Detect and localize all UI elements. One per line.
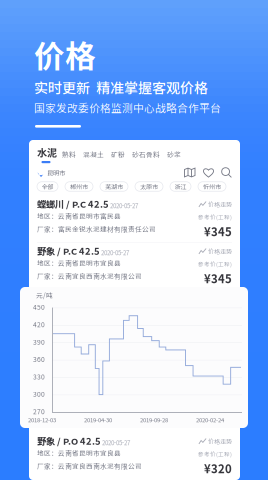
button[interactable]: 野象 / P.O 42.5 [37, 290, 232, 332]
button[interactable]: 砂石骨料 [132, 149, 160, 159]
staticText: 水泥 [37, 145, 57, 159]
staticText: 2019-04-30 [84, 415, 112, 424]
staticText: 野象 / P.O 42.5 [37, 291, 101, 304]
staticText: ¥320 [204, 460, 232, 476]
button[interactable]: 芜湖市 [100, 182, 128, 191]
staticText: 混凝土 [83, 149, 104, 159]
button[interactable]: 熟料 [62, 149, 76, 159]
staticText: 参考价(工程) [198, 260, 232, 268]
staticText: 地区：云南省昆明市宜良县 [37, 448, 121, 458]
button[interactable]: 水泥 [37, 145, 57, 162]
staticText: 2018-12-03 [28, 415, 56, 424]
staticText: 地区：云南省昆明市宜良县 [37, 305, 121, 315]
staticText: 厂家：云南宜良西南水泥有限公司 [37, 461, 142, 471]
staticText: 砂石骨料 [132, 149, 160, 159]
button[interactable]: 混凝土 [83, 149, 104, 159]
staticText: 厂家：云南宜良西南水泥有限公司 [37, 318, 142, 328]
staticText: 价格 [34, 32, 96, 76]
staticText: 330 [33, 372, 45, 381]
button[interactable]: 地图 [184, 167, 196, 177]
staticText: 忻州市 [203, 182, 221, 191]
staticText: 矿粉 [111, 149, 125, 159]
staticText: 2020-02-24 [196, 415, 224, 424]
button[interactable]: 矿粉 [111, 149, 125, 159]
staticText: 野象 / P.O 42.5 [37, 434, 101, 447]
staticText: 郴州市 [70, 182, 88, 191]
staticText: 参考价(工程) [198, 213, 232, 221]
staticText: 厂家：云南宜良西南水泥有限公司 [37, 271, 142, 281]
button[interactable]: 搜索 [221, 167, 232, 178]
button[interactable]: 郴州市 [65, 182, 93, 191]
staticText: 实时更新 精准掌握客观价格 [34, 77, 208, 97]
staticText: 芜湖市 [105, 182, 123, 191]
button[interactable]: 野象 / P.C 42.5 [37, 243, 232, 285]
staticText: 国家发改委价格监测中心战略合作平台 [34, 100, 221, 115]
staticText: 厂家：富民金锐水泥建材有限责任公司 [37, 224, 156, 234]
button[interactable]: 太原市 [135, 182, 163, 191]
button[interactable]: 收藏 [203, 167, 214, 177]
button[interactable]: 砂浆 [167, 149, 181, 159]
staticText: 390 [33, 337, 45, 347]
staticText: 450 [33, 302, 45, 312]
staticText: 地区：云南省昆明市宜良县 [37, 258, 121, 268]
staticText: 浙江 [174, 182, 186, 191]
staticText: 2020-05-27 [101, 438, 130, 447]
staticText: 全部 [41, 182, 53, 191]
staticText: 420 [33, 319, 45, 329]
button[interactable]: 浙江 [170, 182, 191, 191]
staticText: ¥345 [204, 223, 232, 239]
button[interactable]: 螳螂川 / P.C 42.5 [37, 196, 232, 238]
staticText: 砂浆 [167, 149, 181, 159]
staticText: 螳螂川 / P.C 42.5 [37, 197, 109, 210]
staticText: 昆明市 [47, 168, 65, 177]
staticText: 价格走势 [208, 247, 232, 256]
staticText: ¥345 [204, 270, 232, 286]
staticText: 2019-09-28 [140, 415, 168, 424]
staticText: 2020-05-27 [100, 248, 129, 257]
button[interactable]: 野象 / P.O 42.5 [37, 433, 232, 475]
staticText: 2020-05-27 [109, 201, 138, 210]
staticText: 270 [33, 406, 45, 416]
staticText: 元/吨 [36, 290, 53, 300]
staticText: 360 [33, 354, 45, 364]
staticText: 价格走势 [208, 200, 232, 209]
staticText: 熟料 [62, 149, 76, 159]
staticText: 太原市 [140, 182, 158, 191]
staticText: 参考价(工程) [198, 450, 232, 458]
staticText: 地区：云南省昆明市富民县 [37, 211, 121, 221]
button[interactable]: 全部 [37, 182, 58, 191]
button[interactable]: 忻州市 [198, 182, 226, 191]
staticText: 300 [33, 389, 45, 399]
staticText: 价格走势 [208, 437, 232, 446]
staticText: 野象 / P.C 42.5 [37, 244, 100, 257]
